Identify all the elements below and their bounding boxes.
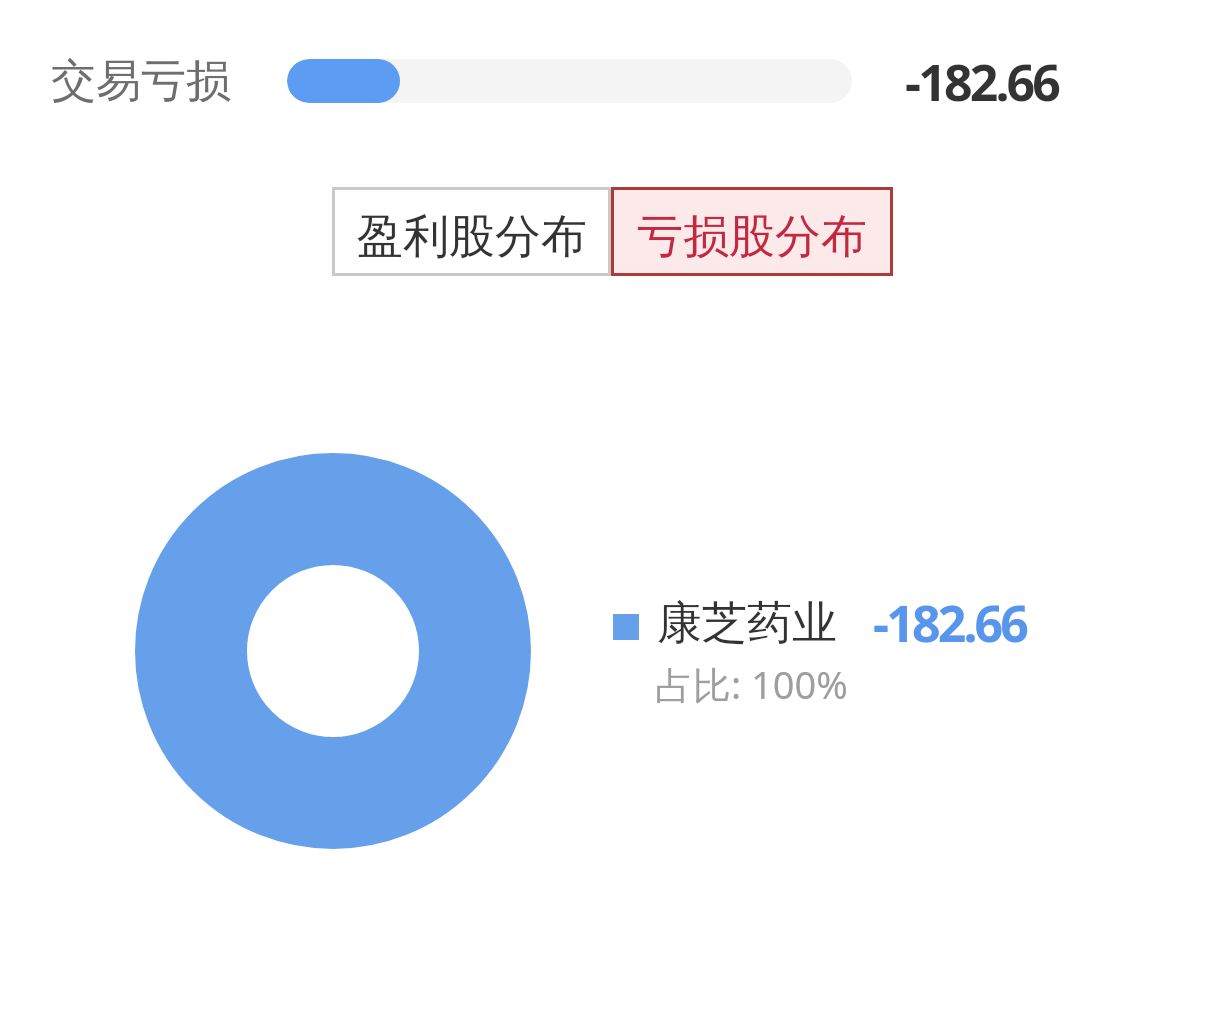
staticText: 盈利股分布 [357, 208, 587, 266]
staticText: -182.66 [905, 48, 1059, 116]
other: 亏损股分布饼图 [135, 453, 531, 849]
staticText: 交易亏损 [51, 53, 231, 110]
button[interactable]: 亏损股分布 [611, 187, 893, 276]
staticText: 康芝药业 [657, 595, 837, 652]
button[interactable]: 康芝药业 [600, 586, 1045, 711]
staticText: 亏损股分布 [637, 208, 867, 266]
staticText: 占比: 100% [655, 658, 848, 710]
button[interactable]: 盈利股分布 [332, 187, 611, 276]
staticText: -182.66 [873, 589, 1027, 657]
